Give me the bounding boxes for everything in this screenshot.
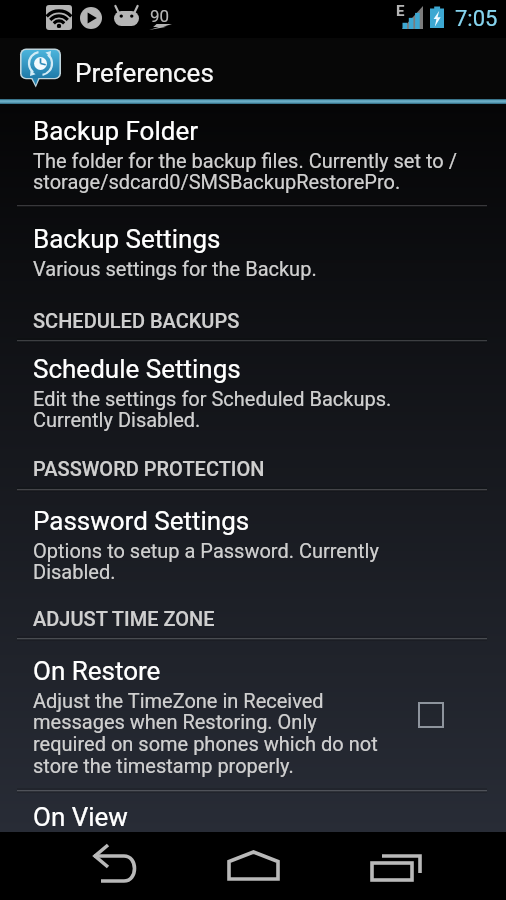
button[interactable]: Recent apps — [325, 832, 467, 900]
staticText: The folder for the backup files. Current… — [33, 149, 461, 193]
staticText: Edit the settings for Scheduled Backups.… — [33, 387, 461, 432]
button[interactable]: On Restore — [0, 656, 506, 778]
staticText: ADJUST TIME ZONE — [33, 607, 215, 630]
button[interactable]: Schedule Settings — [0, 354, 506, 433]
staticText: SCHEDULED BACKUPS — [33, 309, 240, 332]
button[interactable]: Backup Settings — [0, 224, 506, 280]
staticText: Various settings for the Backup. — [33, 257, 317, 280]
button[interactable]: Back — [42, 832, 190, 900]
button[interactable]: On View — [0, 802, 506, 832]
staticText: Schedule Settings — [33, 354, 241, 384]
staticText: Backup Settings — [33, 224, 221, 254]
button[interactable]: Password Settings — [0, 506, 506, 584]
staticText: Options to setup a Password. Currently D… — [33, 539, 461, 584]
staticText: On Restore — [33, 656, 161, 686]
staticText: On View — [33, 802, 128, 832]
staticText: 90 — [150, 6, 170, 26]
staticText: Preferences — [75, 58, 214, 88]
staticText: PASSWORD PROTECTION — [33, 457, 265, 480]
button[interactable]: Home — [182, 832, 324, 900]
staticText: Password Settings — [33, 506, 250, 536]
staticText: Backup Folder — [33, 116, 199, 146]
staticText: 7:05 — [455, 6, 498, 32]
staticText: Adjust the TimeZone in Received messages… — [33, 689, 385, 778]
button[interactable]: Backup Folder — [0, 116, 506, 193]
staticText: E — [396, 2, 405, 20]
